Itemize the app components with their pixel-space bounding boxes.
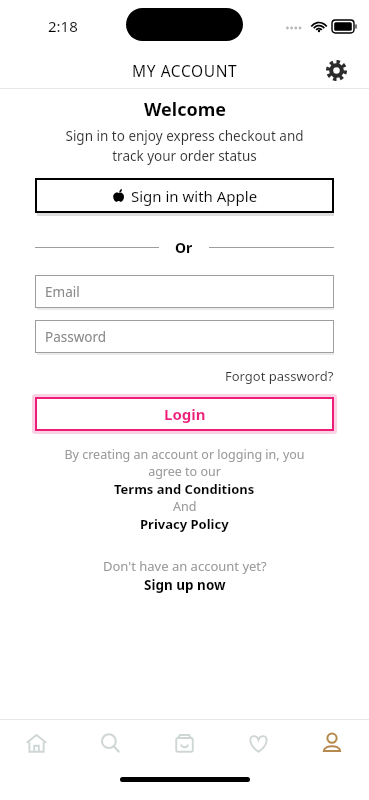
button[interactable]: Login: [35, 397, 334, 431]
button[interactable]: Privacy Policy: [140, 515, 229, 533]
staticText: Sign in to enjoy express checkout and tr…: [65, 127, 304, 165]
staticText: By creating an account or logging in, yo…: [64, 446, 305, 480]
button[interactable]: Sign up now: [144, 576, 226, 594]
staticText: And: [173, 498, 197, 515]
button[interactable]: Search: [73, 720, 147, 766]
button[interactable]: Home: [0, 720, 73, 766]
staticText: 2:18: [48, 16, 78, 36]
button[interactable]: Email: [35, 275, 334, 308]
staticText: Or: [175, 238, 193, 257]
button[interactable]: Bag: [147, 720, 221, 766]
staticText: Welcome: [144, 97, 226, 122]
button[interactable]: Forgot password?: [225, 367, 334, 385]
staticText: Don't have an account yet?: [103, 557, 267, 575]
button[interactable]: Account: [295, 720, 369, 766]
staticText: Login: [164, 404, 206, 424]
button[interactable]: Terms and Conditions: [114, 480, 255, 498]
staticText: Sign in with Apple: [131, 186, 258, 206]
button[interactable]: Password: [35, 320, 334, 353]
button[interactable]: Sign in with Apple: [35, 178, 334, 213]
button[interactable]: Wishlist: [221, 720, 295, 766]
staticText: Email: [45, 283, 80, 301]
staticText: MY ACCOUNT: [132, 60, 238, 81]
staticText: Password: [45, 328, 107, 346]
button[interactable]: Settings: [321, 55, 351, 85]
